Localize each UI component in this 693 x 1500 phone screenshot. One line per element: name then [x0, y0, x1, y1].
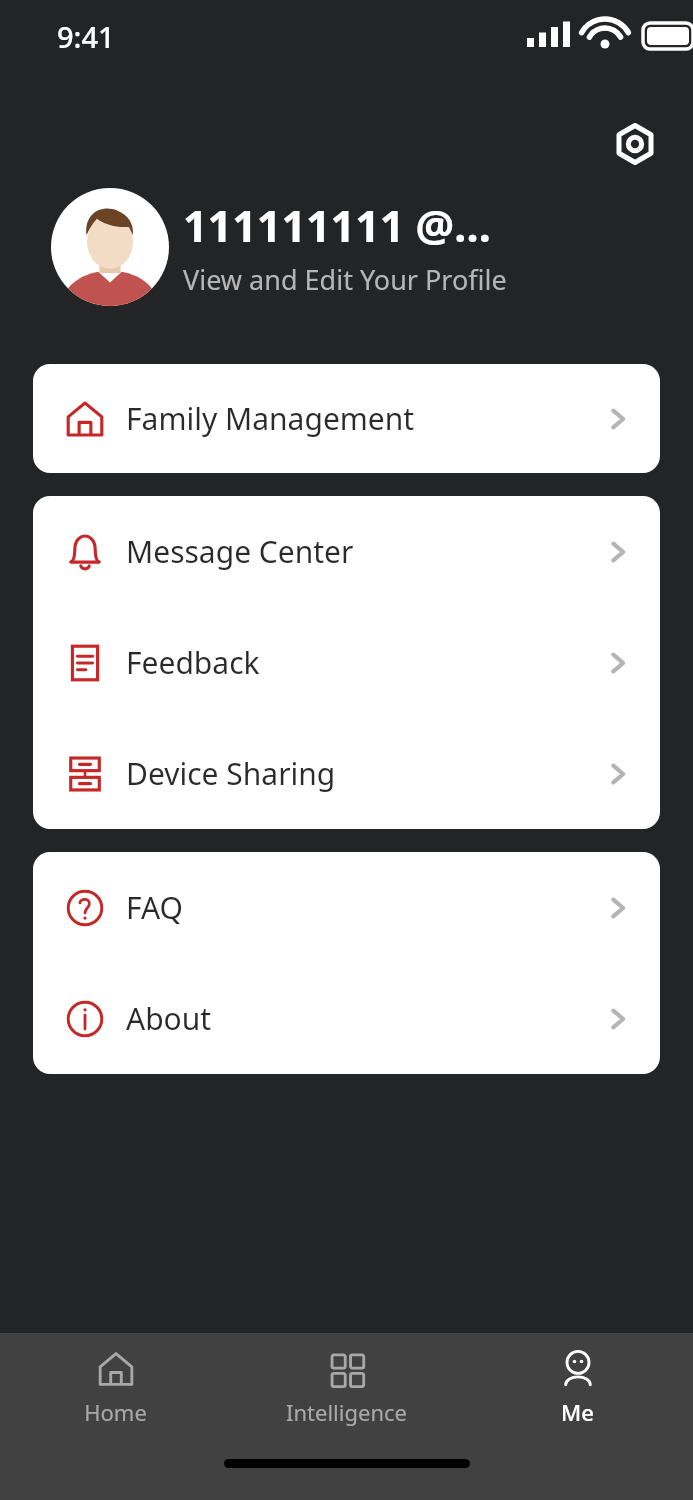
staticText: View and Edit Your Profile — [183, 261, 507, 298]
staticText: Device Sharing — [126, 753, 336, 794]
staticText: Me — [561, 1397, 594, 1427]
button[interactable]: Settings — [607, 116, 663, 172]
button[interactable]: 111111111 @… — [0, 188, 693, 306]
staticText: 9:41 — [57, 17, 115, 56]
button[interactable]: Home — [0, 1333, 231, 1440]
button[interactable]: About — [33, 963, 660, 1074]
staticText: 111111111 @… — [183, 196, 491, 255]
button[interactable]: Intelligence — [231, 1333, 462, 1440]
staticText: FAQ — [126, 887, 183, 928]
staticText: Feedback — [126, 642, 260, 683]
button[interactable]: Family Management — [33, 364, 660, 473]
button[interactable]: FAQ — [33, 852, 660, 963]
staticText: About — [126, 998, 212, 1039]
button[interactable]: Me — [462, 1333, 693, 1440]
button[interactable]: Feedback — [33, 607, 660, 718]
button[interactable]: Device Sharing — [33, 718, 660, 829]
staticText: Family Management — [126, 398, 415, 439]
staticText: Home — [84, 1397, 147, 1427]
staticText: Message Center — [126, 531, 354, 572]
button[interactable]: Message Center — [33, 496, 660, 607]
staticText: Intelligence — [286, 1397, 407, 1427]
